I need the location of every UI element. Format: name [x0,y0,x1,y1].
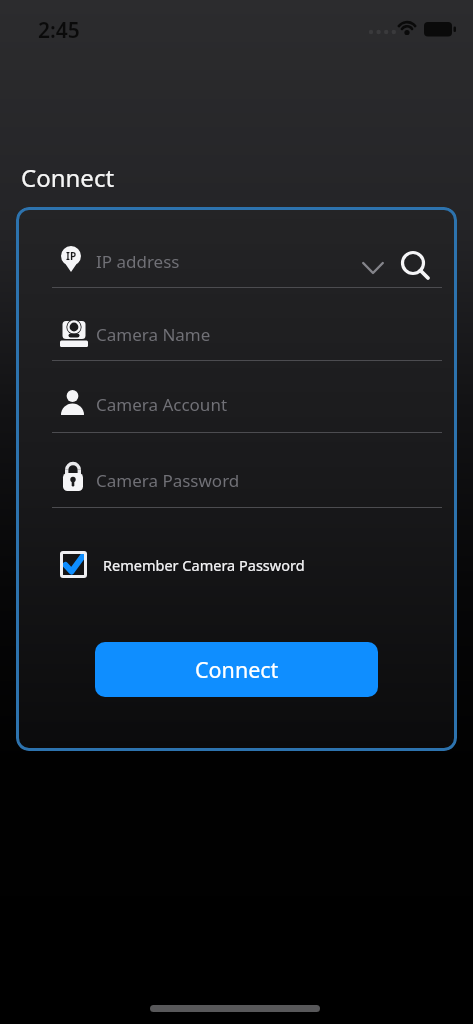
button[interactable]: Camera Name [52,305,442,360]
button[interactable]: Camera Account [52,377,442,432]
button[interactable]: Connect [95,642,378,697]
staticText: 2:45 [38,16,80,45]
staticText: Connect [21,161,115,194]
staticText: IP [66,249,77,263]
button[interactable] [400,250,432,282]
button[interactable]: Remember Camera Password [60,543,305,586]
staticText: Camera Password [96,469,240,492]
staticText: Connect [195,655,279,684]
staticText: Camera Name [96,323,211,346]
staticText: Remember Camera Password [103,555,305,575]
staticText: Camera Account [96,393,228,416]
button[interactable]: Camera Password [52,450,442,506]
staticText: IP address [96,250,180,273]
button[interactable]: IP [52,231,442,288]
